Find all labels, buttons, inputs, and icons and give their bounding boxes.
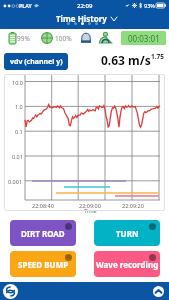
button[interactable]: DIRT ROAD <box>10 220 76 246</box>
staticText: 00:03:01 <box>128 33 160 44</box>
button[interactable]: TURN <box>94 220 160 246</box>
staticText: 22:09 <box>77 2 93 10</box>
staticText: Time <box>84 207 97 214</box>
staticText: 93% <box>144 2 155 9</box>
staticText: 22:08:40 <box>32 202 54 209</box>
staticText: SPEED BUMP <box>18 259 69 270</box>
button[interactable]: Scroll up <box>153 286 164 297</box>
staticText: 0.1 <box>15 128 23 135</box>
staticText: Time History <box>56 13 107 24</box>
staticText: 0.01 <box>12 153 23 160</box>
staticText: 0.63 m/s <box>101 52 151 68</box>
button[interactable]: App menu <box>3 284 18 299</box>
staticText: TURN <box>116 228 139 239</box>
button[interactable]: Wave recording <box>94 251 160 277</box>
staticText: DIRT ROAD <box>21 228 65 239</box>
button[interactable]: Time History <box>56 13 117 24</box>
staticText: 10.0 <box>12 79 23 86</box>
staticText: PLAY <box>19 2 32 9</box>
button[interactable]: vdv (channel y) <box>4 53 68 70</box>
staticText: 0.001 <box>8 178 23 185</box>
staticText: vdv (channel y) <box>10 57 63 67</box>
staticText: 99% <box>17 34 30 43</box>
staticText: 1.75 <box>151 52 164 61</box>
staticText: 100% <box>55 34 72 43</box>
button[interactable]: SPEED BUMP <box>10 251 76 277</box>
staticText: 1.0 <box>15 103 23 110</box>
staticText: 22:09:00 <box>79 202 101 209</box>
staticText: 22:09:20 <box>122 202 144 209</box>
staticText: Wave recording <box>96 259 159 270</box>
